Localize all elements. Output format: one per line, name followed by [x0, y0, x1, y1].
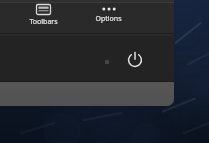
- staticText: Options: [95, 14, 122, 24]
- button[interactable]: Power: [124, 49, 146, 71]
- button[interactable]: Options: [77, 3, 139, 33]
- staticText: Toolbars: [29, 17, 58, 27]
- button[interactable]: Toolbars: [12, 3, 74, 33]
